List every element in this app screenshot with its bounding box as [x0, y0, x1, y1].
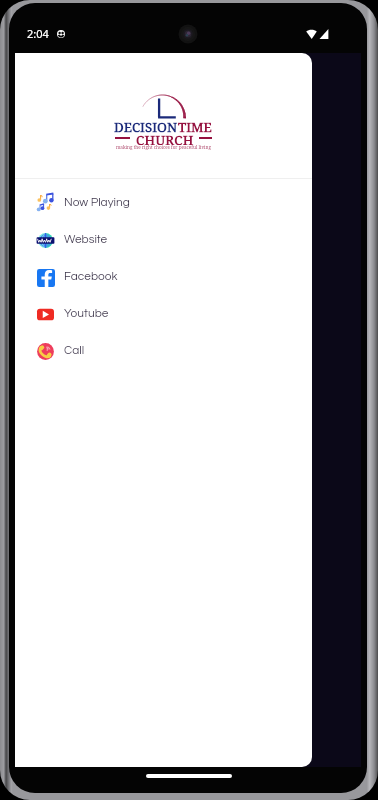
button[interactable]: Now Playing: [15, 185, 312, 222]
other: Call: [37, 343, 54, 360]
staticText: TIME: [178, 118, 212, 136]
staticText: Now Playing: [64, 196, 130, 208]
staticText: making the right choices for peaceful li…: [116, 144, 211, 150]
staticText: Website: [64, 233, 108, 245]
staticText: Youtube: [64, 307, 109, 319]
other: Now Playing: [35, 193, 56, 214]
button[interactable]: Call: [15, 333, 312, 370]
button[interactable]: Website: [15, 222, 312, 259]
staticText: CHURCH: [136, 131, 194, 145]
button[interactable]: Youtube: [15, 296, 312, 333]
staticText: Call: [64, 344, 85, 356]
button[interactable]: Facebook: [15, 259, 312, 296]
other: Youtube: [37, 306, 54, 323]
other: Facebook: [37, 269, 55, 287]
other: Website: [36, 231, 55, 250]
staticText: 2:04: [27, 26, 49, 41]
staticText: Facebook: [64, 270, 118, 282]
staticText: DECISION: [114, 118, 178, 136]
